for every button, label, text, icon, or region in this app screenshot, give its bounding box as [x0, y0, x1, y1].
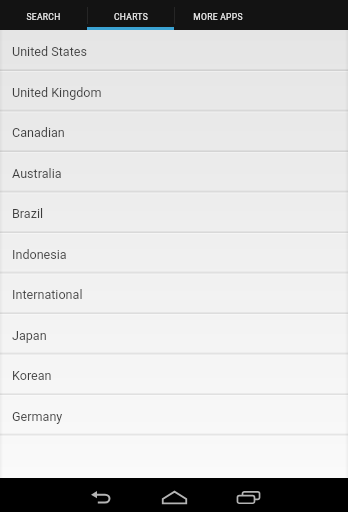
- button[interactable]: United States: [0, 30, 348, 71]
- staticText: Korean: [12, 368, 52, 383]
- button[interactable]: Indonesia: [0, 233, 348, 274]
- button[interactable]: Australia: [0, 152, 348, 193]
- button[interactable]: Brazil: [0, 192, 348, 233]
- staticText: Brazil: [12, 206, 44, 221]
- button[interactable]: Germany: [0, 395, 348, 436]
- staticText: Australia: [12, 166, 62, 181]
- button[interactable]: MORE APPS: [174, 0, 261, 30]
- staticText: United States: [12, 44, 87, 59]
- button[interactable]: Korean: [0, 354, 348, 395]
- button[interactable]: SEARCH: [0, 0, 87, 30]
- button[interactable]: Home: [154, 480, 195, 512]
- button[interactable]: United Kingdom: [0, 71, 348, 112]
- button[interactable]: Recent apps: [228, 480, 269, 512]
- staticText: Indonesia: [12, 247, 67, 262]
- button[interactable]: Back: [80, 480, 121, 512]
- staticText: MORE APPS: [193, 12, 243, 22]
- staticText: CHARTS: [114, 12, 148, 22]
- staticText: Germany: [12, 409, 63, 424]
- staticText: United Kingdom: [12, 85, 102, 100]
- staticText: Japan: [12, 328, 47, 343]
- button[interactable]: International: [0, 273, 348, 314]
- staticText: Canadian: [12, 125, 65, 140]
- button[interactable]: Japan: [0, 314, 348, 355]
- button[interactable]: CHARTS: [87, 0, 174, 30]
- staticText: SEARCH: [26, 12, 61, 22]
- button[interactable]: Canadian: [0, 111, 348, 152]
- staticText: International: [12, 287, 83, 302]
